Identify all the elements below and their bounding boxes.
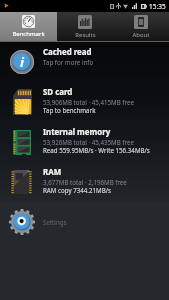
staticText: Cached read <box>43 47 92 58</box>
staticText: i <box>20 53 24 71</box>
staticText: Read 559.95MB/s · Write 156.34MB/s <box>43 146 150 154</box>
staticText: Tap to benchmark <box>43 106 96 114</box>
staticText: Settings <box>43 218 67 226</box>
staticText: Benchmark <box>12 30 45 38</box>
staticText: Results <box>75 31 96 39</box>
button[interactable]: Results <box>57 12 113 41</box>
staticText: SD card <box>43 87 73 98</box>
button[interactable]: Benchmark <box>0 12 57 41</box>
button[interactable]: RAM <box>0 162 169 202</box>
staticText: 3,677MB total · 2,196MB free <box>43 178 127 186</box>
staticText: 15:35 <box>149 2 166 11</box>
staticText: Tap for more info <box>43 58 94 66</box>
button[interactable]: SD card <box>0 82 169 122</box>
staticText: 53,926MB total · 45,435MB free <box>43 138 134 146</box>
button[interactable]: Settings <box>0 202 169 242</box>
staticText: RAM <box>43 167 62 178</box>
button[interactable]: About <box>113 12 169 41</box>
staticText: About <box>132 31 150 39</box>
staticText: RAM copy 7344.21MB/s <box>43 186 111 194</box>
button[interactable]: Internal memory <box>0 122 169 162</box>
staticText: Internal memory <box>43 127 111 138</box>
staticText: 53,906MB total · 45,415MB free <box>43 98 134 106</box>
button[interactable]: i <box>0 42 169 82</box>
